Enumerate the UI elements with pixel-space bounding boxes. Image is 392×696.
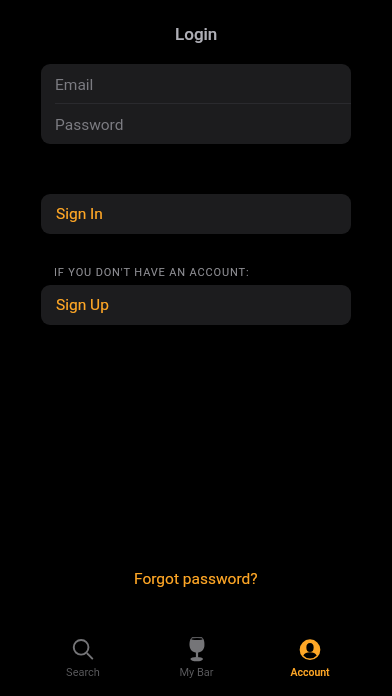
staticText: Sign Up — [56, 296, 109, 314]
other: My Bar — [185, 637, 209, 661]
staticText: Forgot password? — [134, 570, 258, 588]
staticText: Search — [66, 666, 100, 679]
button[interactable]: Search — [26, 626, 140, 696]
other: Account — [298, 637, 322, 661]
button[interactable]: Sign Up — [41, 285, 351, 325]
button[interactable]: Email — [41, 64, 351, 103]
button[interactable]: Account — [253, 626, 366, 696]
button[interactable]: Sign In — [41, 194, 351, 234]
staticText: Login — [175, 24, 218, 44]
staticText: My Bar — [179, 666, 214, 679]
staticText: Sign In — [56, 205, 103, 223]
button[interactable]: My Bar — [140, 626, 253, 696]
other: Search — [71, 637, 95, 661]
staticText: IF YOU DON'T HAVE AN ACCOUNT: — [54, 266, 250, 279]
staticText: Password — [55, 116, 124, 134]
staticText: Email — [55, 76, 94, 94]
button[interactable]: Password — [41, 104, 351, 144]
staticText: Account — [290, 666, 330, 678]
button[interactable]: Forgot password? — [124, 566, 268, 592]
